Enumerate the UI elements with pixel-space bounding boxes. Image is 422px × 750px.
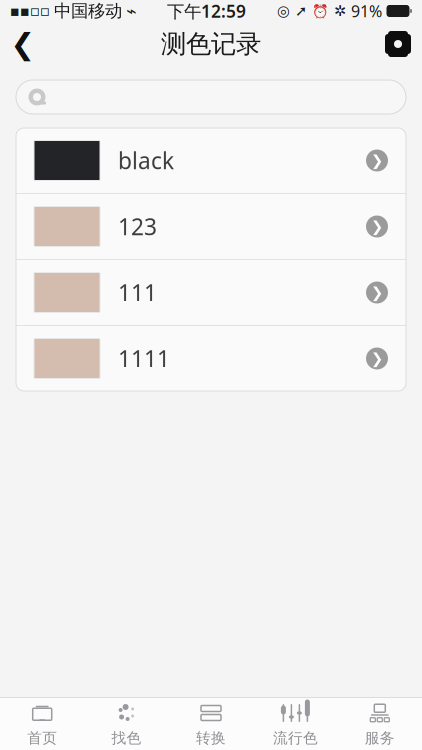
- staticText: ➚: [295, 3, 307, 19]
- staticText: 找色: [112, 729, 142, 747]
- staticText: ❯: [371, 284, 383, 301]
- staticText: ❯: [371, 350, 383, 367]
- button[interactable]: 转换: [169, 698, 253, 750]
- button[interactable]: 服务: [338, 698, 422, 750]
- staticText: 下午12:59: [167, 0, 246, 22]
- staticText: ▪▪▫▫: [10, 3, 50, 19]
- button[interactable]: Settings: [374, 22, 422, 66]
- staticText: ◎: [277, 3, 290, 19]
- staticText: ⏰: [312, 3, 329, 19]
- staticText: 1111: [118, 343, 170, 373]
- button[interactable]: black: [16, 128, 406, 193]
- staticText: 111: [118, 277, 157, 307]
- button[interactable]: Back: [0, 22, 46, 66]
- staticText: 测色记录: [161, 28, 261, 59]
- staticText: 服务: [365, 729, 395, 747]
- staticText: ✲: [334, 3, 346, 19]
- staticText: black: [118, 145, 174, 175]
- staticText: ⌁: [126, 1, 136, 21]
- staticText: 流行色: [273, 729, 318, 747]
- staticText: 首页: [27, 729, 57, 747]
- button[interactable]: 首页: [0, 698, 84, 750]
- staticText: 中国移动: [54, 0, 122, 22]
- staticText: 91%: [351, 0, 382, 22]
- button[interactable]: 111: [16, 260, 406, 325]
- button[interactable]: 找色: [84, 698, 169, 750]
- button[interactable]: 流行色: [253, 698, 338, 750]
- staticText: ❯: [371, 152, 383, 169]
- button[interactable]: 123: [16, 194, 406, 259]
- staticText: 123: [118, 211, 157, 241]
- button[interactable]: Search: [16, 80, 406, 114]
- staticText: ❯: [371, 218, 383, 235]
- staticText: ❮: [10, 27, 35, 61]
- staticText: 转换: [196, 729, 226, 747]
- button[interactable]: 1111: [16, 326, 406, 391]
